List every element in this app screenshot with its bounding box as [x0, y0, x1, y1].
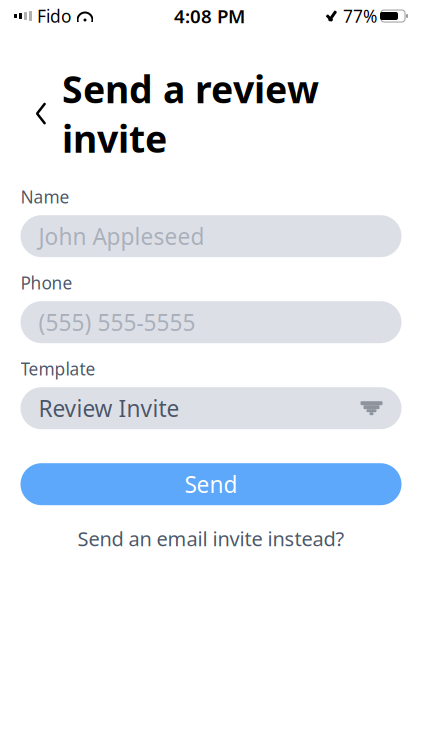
button[interactable]: Review Invite [20, 387, 401, 429]
button[interactable]: (555) 555-5555 [20, 301, 401, 343]
button[interactable]: Send an email invite instead? [67, 519, 354, 558]
button[interactable]: John Appleseed [20, 215, 401, 257]
button[interactable]: Back [28, 97, 54, 131]
staticText: Send an email invite instead? [77, 525, 344, 552]
staticText: John Appleseed [38, 221, 204, 251]
staticText: Review Invite [38, 393, 179, 423]
staticText: Name [20, 185, 69, 208]
staticText: Template [20, 357, 95, 380]
staticText: (555) 555-5555 [38, 307, 195, 337]
staticText: 77% [343, 4, 377, 27]
staticText: 4:08 PM [174, 4, 245, 28]
staticText: Send a review invite [62, 64, 319, 163]
staticText: Fido [37, 4, 71, 27]
staticText: Phone [20, 271, 72, 294]
staticText: Send [184, 469, 237, 499]
button[interactable]: Send [20, 463, 401, 505]
